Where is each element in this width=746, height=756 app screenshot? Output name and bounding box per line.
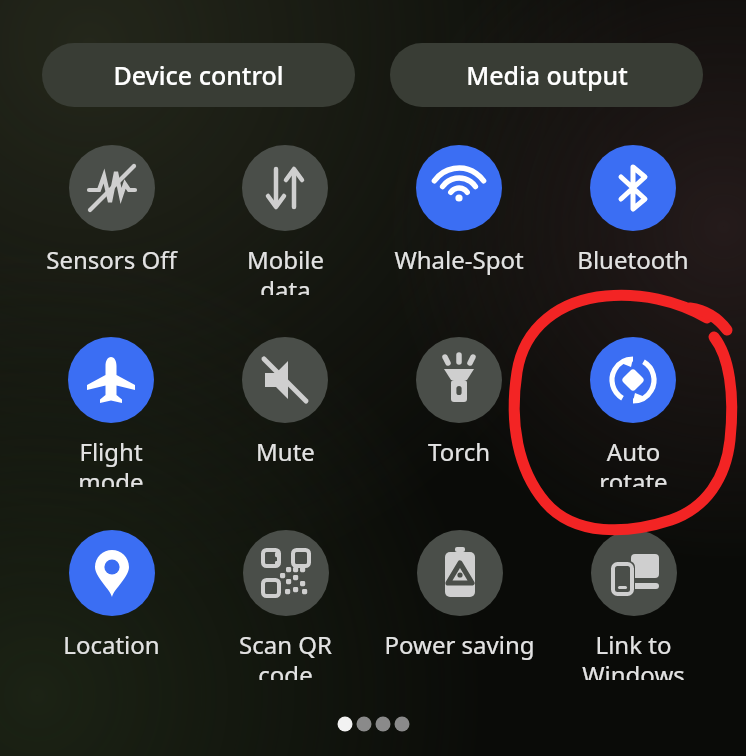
button[interactable]: Whale-Spot: [372, 145, 546, 295]
staticText: Torch: [428, 435, 490, 468]
button[interactable]: Device control: [42, 43, 355, 107]
other: Scan QR code: [243, 530, 329, 616]
staticText: Link to Windows: [582, 628, 685, 680]
staticText: Mobile data: [247, 243, 324, 295]
staticText: Media output: [466, 58, 628, 92]
staticText: Location: [63, 628, 160, 661]
button[interactable]: Mute: [198, 337, 372, 487]
staticText: Sensors Off: [46, 243, 177, 276]
button[interactable]: Scan QR code: [198, 530, 372, 680]
other: Sensors Off: [69, 145, 155, 231]
button[interactable]: Mobile data: [198, 145, 372, 295]
staticText: Bluetooth: [577, 243, 689, 276]
staticText: Mute: [256, 435, 315, 468]
other: Location: [69, 530, 155, 616]
staticText: Power saving: [384, 628, 535, 661]
staticText: Device control: [113, 58, 284, 92]
button[interactable]: Flight mode: [24, 337, 198, 487]
staticText: Scan QR code: [239, 628, 332, 680]
other: Power saving: [417, 530, 503, 616]
staticText: Flight mode: [78, 435, 144, 487]
button[interactable]: Torch: [372, 337, 546, 487]
other: Torch: [416, 337, 502, 423]
staticText: Whale-Spot: [394, 243, 524, 276]
staticText: Auto rotate: [599, 435, 668, 487]
button[interactable]: Power saving: [372, 530, 546, 680]
button[interactable]: Media output: [390, 43, 703, 107]
button[interactable]: Link to Windows: [546, 530, 720, 680]
button[interactable]: Auto rotate: [546, 337, 720, 487]
other: Mobile data: [242, 145, 328, 231]
button[interactable]: Sensors Off: [24, 145, 198, 295]
other: Link to Windows: [591, 530, 677, 616]
other: Flight mode: [68, 337, 154, 423]
other: Whale-Spot: [416, 145, 502, 231]
button[interactable]: Bluetooth: [546, 145, 720, 295]
other: Auto rotate: [590, 337, 676, 423]
other: Mute: [242, 337, 328, 423]
other: Bluetooth: [590, 145, 676, 231]
button[interactable]: Location: [24, 530, 198, 680]
